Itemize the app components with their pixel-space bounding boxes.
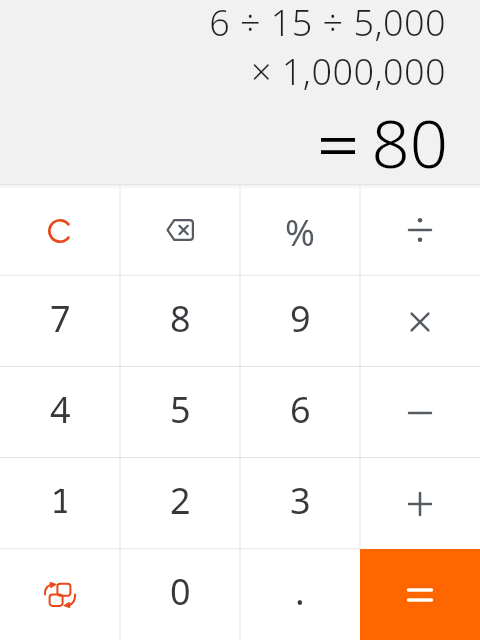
- button[interactable]: Minus: [360, 367, 480, 458]
- button[interactable]: Equals: [360, 549, 480, 640]
- staticText: 7: [50, 294, 71, 343]
- staticText: 80: [371, 96, 448, 182]
- button[interactable]: 8: [120, 276, 240, 367]
- button[interactable]: Percent: [240, 184, 360, 276]
- staticText: 3: [290, 476, 311, 525]
- button[interactable]: 7: [0, 276, 120, 367]
- button[interactable]: Unit converter: [0, 549, 120, 640]
- button[interactable]: 0: [120, 549, 240, 640]
- button[interactable]: 6: [240, 367, 360, 458]
- button[interactable]: Backspace: [120, 184, 240, 276]
- button[interactable]: Multiply: [360, 276, 480, 367]
- staticText: 9: [290, 294, 311, 343]
- staticText: 6: [290, 385, 311, 434]
- button[interactable]: 2: [120, 458, 240, 549]
- button[interactable]: Decimal point: [240, 549, 360, 640]
- staticText: %: [285, 208, 315, 257]
- button[interactable]: 9: [240, 276, 360, 367]
- button[interactable]: 3: [240, 458, 360, 549]
- staticText: .: [295, 567, 305, 616]
- staticText: 0: [170, 567, 191, 616]
- button[interactable]: 4: [0, 367, 120, 458]
- button[interactable]: Plus: [360, 458, 480, 549]
- button[interactable]: Divide: [360, 184, 480, 276]
- staticText: 4: [50, 385, 71, 434]
- button[interactable]: 1: [0, 458, 120, 549]
- button[interactable]: Clear: [0, 184, 120, 276]
- button[interactable]: 5: [120, 367, 240, 458]
- staticText: 5: [170, 385, 191, 434]
- staticText: 2: [170, 476, 191, 525]
- staticText: 8: [170, 294, 191, 343]
- staticText: 6 ÷ 15 ÷ 5,000: [209, 0, 446, 47]
- staticText: × 1,000,000: [251, 47, 446, 96]
